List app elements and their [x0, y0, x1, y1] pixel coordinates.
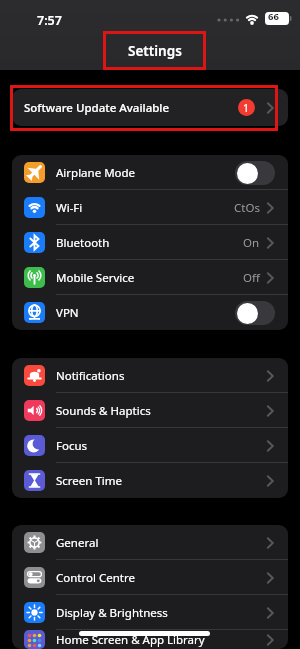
- button[interactable]: Bluetooth: [12, 225, 288, 260]
- staticText: Off: [243, 270, 260, 286]
- button[interactable]: Focus: [12, 428, 288, 463]
- staticText: VPN: [56, 305, 79, 321]
- staticText: Settings: [128, 42, 182, 60]
- staticText: 1: [243, 101, 250, 115]
- staticText: Notifications: [56, 368, 125, 384]
- button[interactable]: Software Update Available: [12, 89, 288, 126]
- button[interactable]: Wi-Fi: [12, 190, 288, 225]
- staticText: On: [243, 235, 260, 251]
- button[interactable]: Screen Time: [12, 463, 288, 498]
- button[interactable]: Home Screen & App Library: [12, 630, 288, 649]
- staticText: General: [56, 535, 99, 551]
- staticText: Sounds & Haptics: [56, 403, 151, 419]
- staticText: Bluetooth: [56, 235, 110, 251]
- staticText: Home Screen & App Library: [56, 632, 205, 648]
- staticText: Wi-Fi: [56, 200, 83, 216]
- staticText: 7:57: [37, 12, 62, 29]
- button[interactable]: VPN: [12, 295, 288, 330]
- button[interactable]: Sounds & Haptics: [12, 393, 288, 428]
- button[interactable]: Display & Brightness: [12, 595, 288, 630]
- button[interactable]: Control Centre: [12, 560, 288, 595]
- button[interactable]: Airplane Mode: [12, 155, 288, 190]
- staticText: Airplane Mode: [56, 165, 136, 181]
- staticText: 66: [268, 10, 279, 23]
- staticText: Mobile Service: [56, 270, 135, 286]
- button[interactable]: Mobile Service: [12, 260, 288, 295]
- staticText: CtOs: [234, 200, 260, 216]
- staticText: Display & Brightness: [56, 605, 168, 621]
- staticText: Focus: [56, 438, 88, 454]
- button[interactable]: General: [12, 525, 288, 560]
- button[interactable]: Notifications: [12, 358, 288, 393]
- staticText: Screen Time: [56, 473, 123, 489]
- staticText: Software Update Available: [24, 100, 170, 116]
- staticText: Control Centre: [56, 570, 135, 586]
